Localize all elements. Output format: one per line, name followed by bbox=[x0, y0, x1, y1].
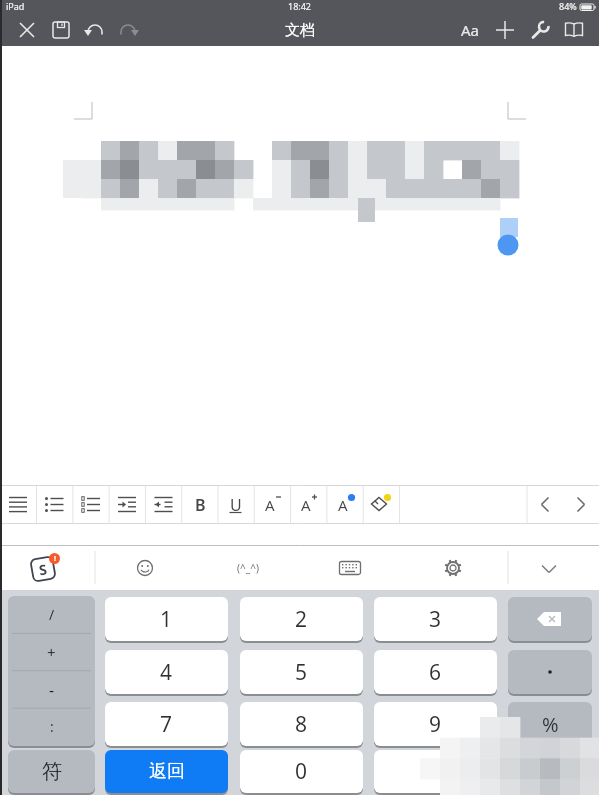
button[interactable] bbox=[13, 16, 41, 44]
button[interactable] bbox=[363, 486, 399, 523]
button[interactable] bbox=[218, 486, 254, 523]
staticText: A bbox=[301, 495, 311, 515]
button[interactable] bbox=[333, 551, 367, 585]
staticText: iPad bbox=[6, 0, 25, 12]
button[interactable]: 9 bbox=[374, 702, 497, 748]
staticText: (^_^) bbox=[237, 561, 259, 575]
staticText: S bbox=[37, 559, 49, 579]
button[interactable]: % bbox=[508, 702, 592, 748]
button[interactable] bbox=[128, 551, 162, 585]
button[interactable] bbox=[73, 486, 109, 523]
button[interactable]: 8 bbox=[240, 702, 363, 748]
button[interactable] bbox=[564, 486, 599, 523]
staticText: A bbox=[338, 495, 348, 515]
staticText: 3 bbox=[429, 605, 442, 634]
button[interactable] bbox=[528, 486, 563, 523]
staticText: 5 bbox=[295, 658, 308, 687]
button[interactable] bbox=[374, 750, 497, 795]
staticText: 1 bbox=[160, 605, 173, 634]
staticText: Aa bbox=[461, 20, 480, 40]
staticText: 84% bbox=[559, 0, 577, 12]
button[interactable] bbox=[114, 16, 142, 44]
button[interactable]: 返回 bbox=[105, 750, 228, 795]
button[interactable] bbox=[508, 650, 592, 696]
button[interactable]: Aa bbox=[456, 16, 484, 44]
button[interactable] bbox=[254, 486, 290, 523]
staticText: 6 bbox=[429, 658, 442, 687]
button[interactable]: 6 bbox=[374, 650, 497, 696]
staticText: 7 bbox=[160, 710, 173, 739]
staticText: A bbox=[265, 495, 275, 515]
button[interactable] bbox=[81, 16, 109, 44]
staticText: U bbox=[230, 494, 242, 516]
button[interactable] bbox=[145, 486, 181, 523]
staticText: 返回 bbox=[149, 760, 185, 783]
button[interactable]: S bbox=[28, 553, 64, 585]
button[interactable]: 4 bbox=[105, 650, 228, 696]
button[interactable]: (^_^) bbox=[226, 551, 270, 585]
button[interactable] bbox=[0, 486, 36, 523]
staticText: B bbox=[195, 494, 206, 516]
staticText: 符 bbox=[42, 759, 62, 784]
button[interactable]: 2 bbox=[240, 597, 363, 643]
button[interactable] bbox=[491, 16, 519, 44]
button[interactable] bbox=[47, 16, 75, 44]
staticText: 文档 bbox=[285, 21, 315, 40]
button[interactable] bbox=[526, 16, 554, 44]
staticText: 9 bbox=[429, 710, 442, 739]
button[interactable]: 7 bbox=[105, 702, 228, 748]
button[interactable] bbox=[109, 486, 145, 523]
button[interactable] bbox=[37, 486, 73, 523]
staticText: + bbox=[47, 642, 56, 662]
button[interactable]: 3 bbox=[374, 597, 497, 643]
staticText: / bbox=[49, 605, 55, 624]
button[interactable] bbox=[436, 551, 470, 585]
button[interactable]: 5 bbox=[240, 650, 363, 696]
button[interactable] bbox=[508, 597, 592, 643]
staticText: 0 bbox=[295, 757, 308, 786]
staticText: % bbox=[542, 711, 559, 738]
staticText: 8 bbox=[295, 710, 308, 739]
staticText: - bbox=[49, 679, 55, 701]
button[interactable]: / bbox=[8, 596, 95, 747]
staticText: 4 bbox=[160, 658, 173, 687]
staticText: 18:42 bbox=[288, 0, 312, 12]
button[interactable] bbox=[532, 551, 566, 585]
staticText: : bbox=[50, 717, 54, 736]
button[interactable] bbox=[560, 16, 588, 44]
button[interactable] bbox=[291, 486, 327, 523]
button[interactable] bbox=[327, 486, 363, 523]
button[interactable]: 符 bbox=[8, 750, 95, 795]
button[interactable] bbox=[182, 486, 218, 523]
button[interactable]: 0 bbox=[240, 750, 363, 795]
staticText: ! bbox=[54, 554, 56, 564]
staticText: 2 bbox=[295, 605, 308, 634]
button[interactable]: 1 bbox=[105, 597, 228, 643]
